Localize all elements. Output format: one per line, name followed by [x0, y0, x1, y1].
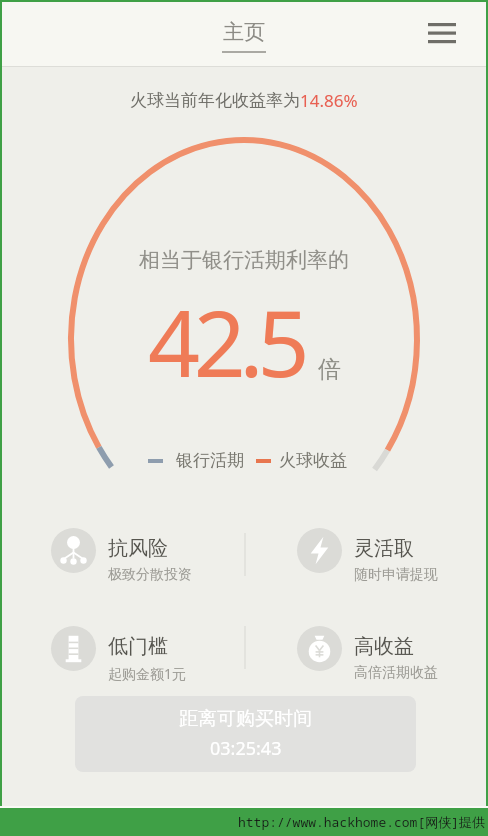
staticText: 极致分散投资: [108, 566, 192, 584]
staticText: 高收益: [354, 634, 414, 659]
staticText: 03:25:43: [210, 736, 282, 761]
staticText: 42.5: [148, 280, 304, 404]
staticText: 火球当前年化收益率为: [130, 90, 300, 111]
staticText: 高倍活期收益: [354, 664, 438, 682]
staticText: 灵活取: [354, 536, 414, 561]
button[interactable]: 灵活取: [297, 527, 482, 587]
staticText: 抗风险: [108, 536, 168, 561]
button[interactable]: 高收益: [297, 625, 482, 685]
button[interactable]: 距离可购买时间: [75, 696, 416, 772]
staticText: 14.86%: [300, 89, 358, 112]
staticText: http://www.hackhome.com[网侠]提供: [238, 813, 486, 831]
button[interactable]: 低门槛: [51, 625, 236, 685]
staticText: 火球收益: [279, 450, 347, 471]
staticText: 倍: [318, 355, 341, 384]
staticText: 起购金额1元: [108, 664, 187, 683]
button[interactable]: [424, 16, 460, 52]
staticText: 低门槛: [108, 634, 168, 659]
staticText: 主页: [223, 19, 265, 45]
staticText: 随时申请提现: [354, 566, 438, 584]
staticText: 距离可购买时间: [179, 707, 312, 731]
button[interactable]: 抗风险: [51, 527, 236, 587]
staticText: 银行活期: [176, 450, 244, 471]
staticText: 相当于银行活期利率的: [139, 247, 349, 273]
